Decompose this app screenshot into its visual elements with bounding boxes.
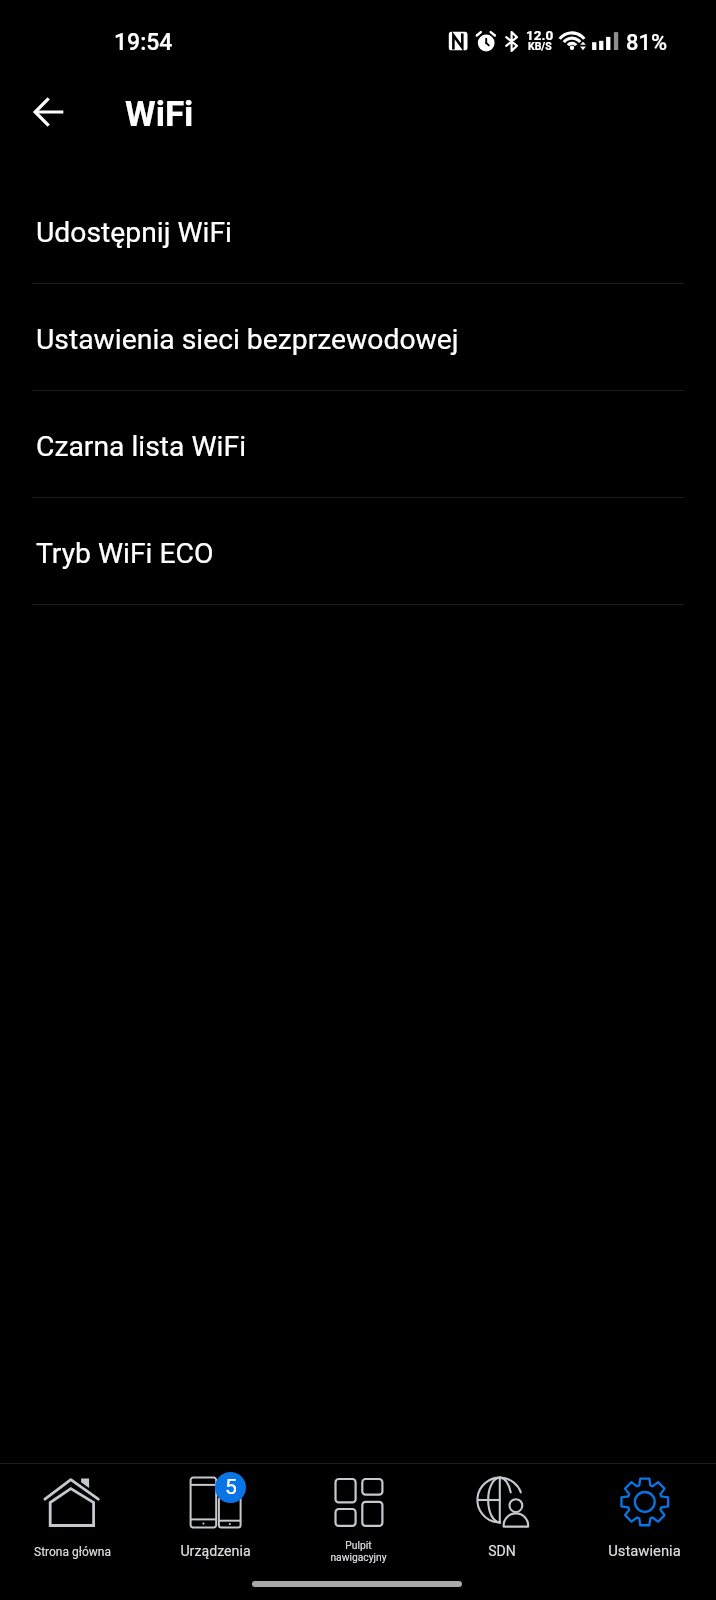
staticText: Pulpit [345, 1539, 372, 1551]
staticText: Ustawienia sieci bezprzewodowej [36, 323, 459, 356]
staticText: 81% [626, 30, 668, 56]
staticText: Udostępnij WiFi [36, 216, 233, 249]
button[interactable]: Ustawienia [573, 1463, 716, 1569]
button[interactable]: SDN [430, 1463, 573, 1569]
staticText: 5 [225, 1475, 237, 1500]
staticText: WiFi [125, 94, 194, 135]
staticText: Czarna lista WiFi [36, 430, 247, 463]
staticText: KB/S [528, 40, 552, 52]
button[interactable]: Tryb WiFi ECO [0, 498, 716, 605]
button[interactable]: Pulpit [287, 1463, 430, 1569]
staticText: Ustawienia [608, 1542, 681, 1559]
staticText: SDN [488, 1543, 516, 1559]
staticText: 12.0 [526, 27, 554, 43]
staticText: Tryb WiFi ECO [36, 537, 214, 570]
staticText: Strona główna [34, 1545, 111, 1559]
staticText: nawigacyjny [330, 1551, 387, 1563]
button[interactable]: Czarna lista WiFi [0, 391, 716, 498]
staticText: Urządzenia [180, 1543, 251, 1560]
button[interactable]: 5 [144, 1463, 287, 1569]
button[interactable]: Back [17, 68, 81, 132]
button[interactable]: Ustawienia sieci bezprzewodowej [0, 284, 716, 391]
button[interactable]: Udostępnij WiFi [0, 177, 716, 284]
button[interactable]: Strona główna [0, 1463, 144, 1569]
staticText: 19:54 [114, 29, 173, 56]
